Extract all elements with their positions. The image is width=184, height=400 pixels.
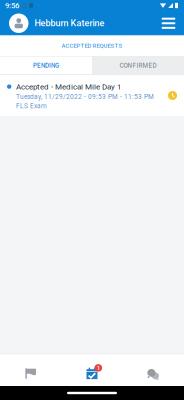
button[interactable]: Messages [123,353,184,386]
staticText: CONFIRMED [119,62,156,69]
staticText: 1 [97,364,100,371]
button[interactable]: Menu [160,13,177,33]
button[interactable]: CONFIRMED [92,57,184,74]
staticText: Accepted - Medical Mile Day 1 [16,82,121,91]
button[interactable]: PENDING [0,57,92,74]
button[interactable]: Schedule [61,353,123,386]
staticText: Hebburn Katerine [34,18,104,28]
staticText: FLS Exam [16,102,47,110]
button[interactable]: Requests [0,353,61,386]
button[interactable]: Accepted - Medical Mile Day 1 [0,75,184,116]
button[interactable]: Profile [9,13,28,33]
staticText: Tuesday, 11/29/2022 - 09:53 PM - 11:53 P… [16,93,154,101]
staticText: 9:56 [5,1,19,10]
staticText: ACCEPTED REQUESTS [61,42,122,49]
staticText: PENDING [33,62,59,69]
